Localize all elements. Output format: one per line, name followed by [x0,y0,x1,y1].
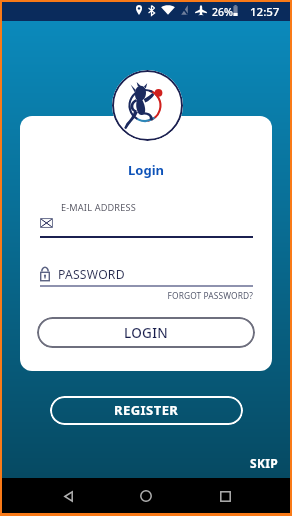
button[interactable]: Home [123,484,169,508]
staticText: Login [0,161,292,179]
button[interactable]: FORGOT PASSWORD? [150,290,253,301]
staticText: E-MAIL ADDRESS [61,201,136,214]
staticText: PASSWORD [58,266,125,283]
button[interactable]: Recent apps [202,484,248,508]
staticText: 12:57 [250,4,280,20]
staticText: REGISTER [114,401,179,419]
staticText: 26% [212,5,233,19]
staticText: LOGIN [124,324,169,342]
staticText: FORGOT PASSWORD? [150,290,253,301]
button[interactable]: Back [45,484,91,508]
staticText: SKIP [250,455,278,471]
button[interactable]: REGISTER [50,396,243,425]
button[interactable]: SKIP [242,447,286,479]
button[interactable]: LOGIN [37,317,255,348]
